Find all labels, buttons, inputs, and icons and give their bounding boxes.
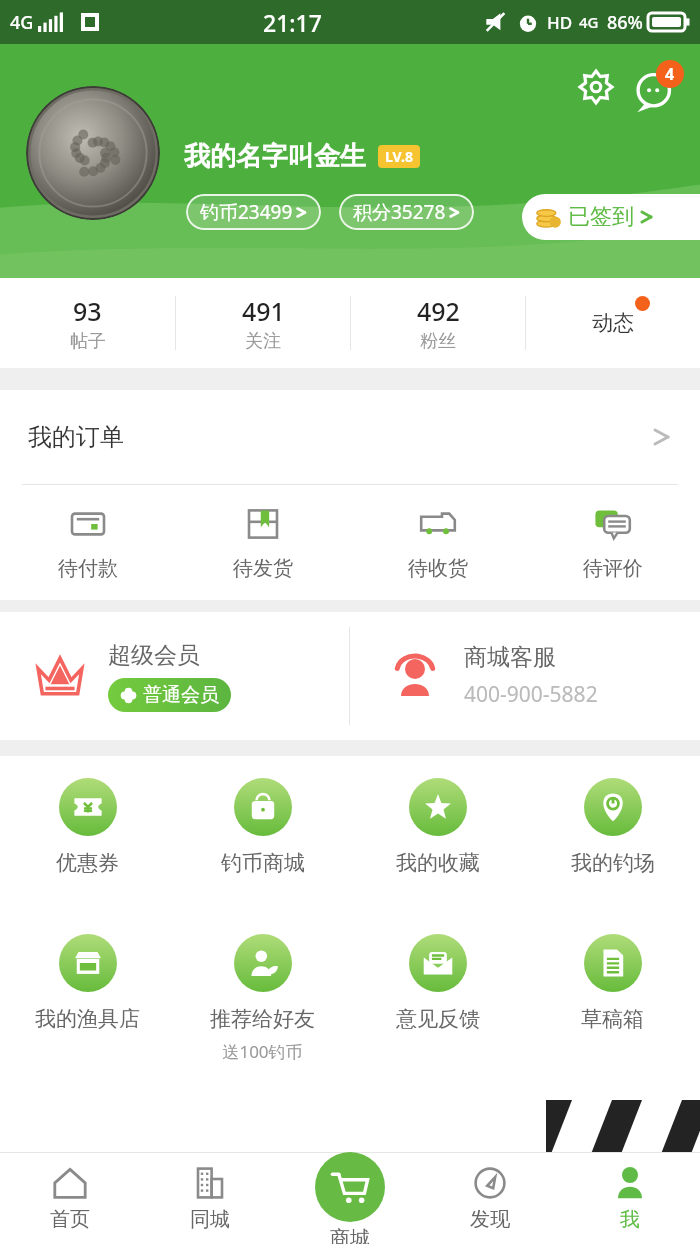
staticText: 同城 [190,1207,230,1232]
button[interactable]: 待收货 [350,485,525,600]
button[interactable]: Settings [572,63,620,111]
button[interactable]: 意见反馈 [350,934,525,1090]
button[interactable]: 我 [560,1152,700,1244]
staticText: 4 [665,63,675,85]
staticText: 推荐给好友 [210,1006,315,1032]
button[interactable]: 93 [0,278,175,368]
button[interactable]: 同城 [140,1152,280,1244]
staticText: 我的订单 [28,422,124,452]
button[interactable]: 超级会员 [0,612,349,740]
button[interactable]: 发现 [420,1152,560,1244]
button[interactable]: 我的收藏 [350,778,525,934]
staticText: 93 [73,294,102,328]
button[interactable]: 商城 [280,1152,420,1244]
button[interactable]: 我的订单 [0,390,700,484]
staticText: 动态 [592,310,634,336]
staticText: 我的收藏 [396,850,480,876]
staticText: 普通会员 [143,683,219,707]
button[interactable]: 动态 [526,278,700,368]
button[interactable]: 我的钓场 [525,778,700,934]
staticText: 意见反馈 [396,1006,480,1032]
staticText: 送100钓币 [222,1040,303,1063]
staticText: 待发货 [233,556,293,581]
staticText: 钓币商城 [221,850,305,876]
staticText: 待评价 [583,556,643,581]
staticText: 4G [10,10,34,35]
staticText: 待收货 [408,556,468,581]
staticText: 已签到 [568,203,634,231]
staticText: 超级会员 [108,641,200,670]
staticText: 粉丝 [420,330,456,353]
button[interactable]: 待发货 [175,485,350,600]
staticText: 86% [607,10,643,35]
staticText: LV.8 [385,147,413,166]
staticText: HD [547,11,573,34]
staticText: 待付款 [58,556,118,581]
staticText: 21:17 [263,7,322,38]
button[interactable]: Messages [630,60,684,114]
staticText: 我 [620,1207,640,1232]
staticText: 优惠券 [56,850,119,876]
staticText: 钓币23499 [200,199,293,225]
button[interactable]: 推荐给好友 [175,934,350,1090]
button[interactable]: 待付款 [0,485,175,600]
button[interactable]: 草稿箱 [525,934,700,1090]
button[interactable]: 已签到 [522,194,700,240]
button[interactable]: 商城客服 [350,612,700,740]
button[interactable]: 待评价 [525,485,700,600]
button[interactable]: 钓币商城 [175,778,350,934]
staticText: 首页 [50,1207,90,1232]
button[interactable]: 我的渔具店 [0,934,175,1090]
button[interactable]: 491 [176,278,350,368]
staticText: 帖子 [70,330,106,353]
staticText: 492 [417,294,460,328]
staticText: 4G [579,12,599,32]
button[interactable]: 首页 [0,1152,140,1244]
staticText: 发现 [470,1207,510,1232]
button[interactable]: 积分35278 [339,194,474,230]
staticText: 我的名字叫金生 [184,140,366,173]
button[interactable]: Avatar [26,86,160,220]
staticText: 我的钓场 [571,850,655,876]
staticText: 我的渔具店 [35,1006,140,1032]
staticText: 商城 [330,1226,370,1244]
staticText: 商城客服 [464,643,556,672]
button[interactable]: 492 [351,278,525,368]
staticText: 草稿箱 [581,1006,644,1032]
staticText: 积分35278 [353,199,446,225]
staticText: 491 [242,294,285,328]
staticText: 关注 [245,330,281,353]
button[interactable]: 优惠券 [0,778,175,934]
button[interactable]: 钓币23499 [186,194,321,230]
staticText: 400-900-5882 [464,680,598,709]
